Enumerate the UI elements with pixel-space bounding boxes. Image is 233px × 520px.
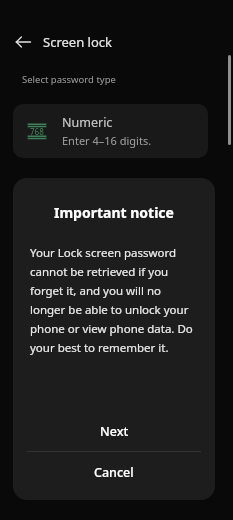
staticText: Your Lock screen password cannot be retr…	[30, 245, 198, 355]
staticText: Next	[100, 423, 129, 440]
staticText: Important notice	[54, 203, 174, 222]
button[interactable]: Back	[7, 26, 39, 58]
button[interactable]: Cancel	[13, 452, 215, 492]
staticText: Enter 4–16 digits.	[62, 133, 152, 148]
button[interactable]: Next	[13, 412, 215, 451]
button[interactable]: 768	[13, 104, 208, 158]
staticText: Numeric	[62, 114, 113, 131]
staticText: 768	[30, 126, 44, 137]
staticText: Screen lock	[43, 33, 112, 51]
staticText: Cancel	[94, 464, 134, 481]
staticText: Select password type	[22, 73, 116, 86]
